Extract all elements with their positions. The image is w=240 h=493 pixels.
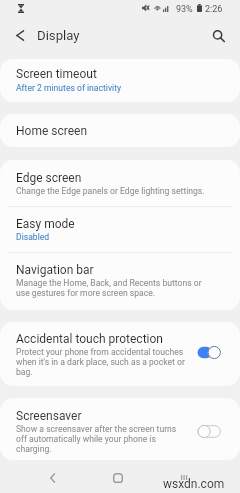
button[interactable]: Toggle on bbox=[196, 345, 222, 360]
staticText: Navigation bar bbox=[16, 263, 94, 277]
staticText: 93% bbox=[176, 4, 193, 15]
staticText: Change the Edge panels or Edge lighting … bbox=[16, 186, 205, 196]
button[interactable]: Screen timeout bbox=[0, 59, 240, 102]
staticText: Edge screen bbox=[16, 171, 82, 185]
staticText: 2:26 bbox=[205, 4, 223, 15]
staticText: After 2 minutes of inactivity bbox=[16, 83, 122, 93]
staticText: Show a screensaver after the screen turn… bbox=[16, 424, 187, 454]
button[interactable]: Home screen bbox=[0, 114, 240, 147]
button[interactable]: Search bbox=[202, 19, 234, 51]
button[interactable]: Edge screen bbox=[0, 160, 240, 206]
button[interactable]: Easy mode bbox=[0, 207, 240, 252]
staticText: Disabled bbox=[16, 232, 50, 242]
staticText: Accidental touch protection bbox=[16, 332, 163, 346]
staticText: Manage the Home, Back, and Recents butto… bbox=[16, 278, 208, 298]
button[interactable]: Back bbox=[36, 461, 68, 493]
button[interactable]: Recents bbox=[168, 461, 200, 493]
button[interactable]: Accidental touch protection bbox=[0, 322, 240, 386]
button[interactable]: Home bbox=[102, 461, 134, 493]
staticText: Display bbox=[37, 28, 80, 43]
staticText: wsxdn.com bbox=[163, 477, 225, 491]
button[interactable]: Navigation bar bbox=[0, 253, 240, 310]
staticText: Screen timeout bbox=[16, 67, 97, 81]
button[interactable]: Screensaver bbox=[0, 398, 240, 460]
staticText: Protect your phone from accidental touch… bbox=[16, 347, 187, 377]
button[interactable]: Toggle off bbox=[196, 424, 222, 439]
button[interactable]: Back bbox=[4, 19, 36, 51]
staticText: Easy mode bbox=[16, 217, 75, 231]
staticText: Home screen bbox=[16, 124, 88, 138]
staticText: Screensaver bbox=[16, 409, 82, 423]
